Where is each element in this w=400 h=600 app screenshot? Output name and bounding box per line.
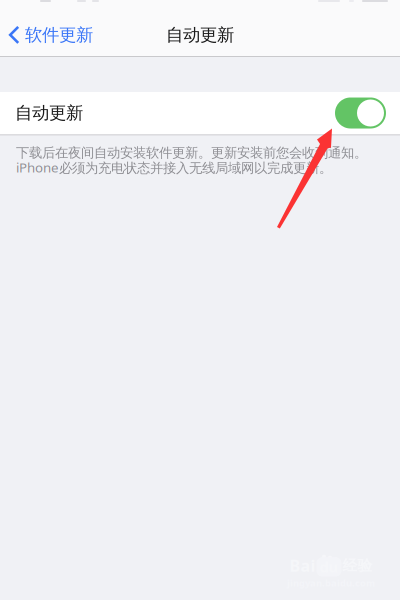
staticText: 自动更新 <box>166 24 234 46</box>
button[interactable]: 软件更新 <box>0 17 101 53</box>
button[interactable]: 自动更新 <box>0 92 400 134</box>
staticText: 下载后在夜间自动安装软件更新。更新安装前您会收到通知。iPhone必须为充电状态… <box>16 145 367 176</box>
staticText: 自动更新 <box>15 102 83 124</box>
staticText: 软件更新 <box>25 24 93 46</box>
